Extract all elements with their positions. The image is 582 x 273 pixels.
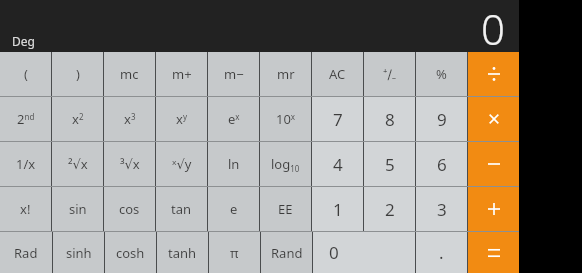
staticText: m+ <box>172 65 192 83</box>
button[interactable]: m+ <box>156 52 207 96</box>
button[interactable]: sin <box>52 187 103 231</box>
button[interactable]: 0 <box>313 232 415 273</box>
button[interactable]: Rand <box>261 232 312 273</box>
button[interactable]: x! <box>0 187 51 231</box>
staticText: 0 <box>329 241 339 264</box>
button[interactable]: cos <box>104 187 155 231</box>
button[interactable]: AC <box>312 52 363 96</box>
staticText: m− <box>224 65 244 83</box>
button[interactable]: tanh <box>157 232 208 273</box>
staticText: sin <box>69 200 87 218</box>
button[interactable]: ²√x <box>52 142 103 186</box>
staticText: 5 <box>385 153 395 176</box>
button[interactable]: mr <box>260 52 311 96</box>
staticText: xy <box>176 110 187 128</box>
button[interactable]: ³√x <box>104 142 155 186</box>
button[interactable]: x3 <box>104 97 155 141</box>
staticText: ( <box>24 65 28 83</box>
staticText: sinh <box>66 244 92 262</box>
staticText: 2 <box>385 198 395 221</box>
staticText: Rand <box>271 244 303 262</box>
button[interactable]: 8 <box>364 97 415 141</box>
staticText: 1/x <box>16 155 36 173</box>
staticText: ln <box>228 155 240 173</box>
staticText: EE <box>278 200 293 218</box>
button[interactable]: . <box>416 232 467 273</box>
staticText: 3 <box>437 198 447 221</box>
staticText: ˣ√y <box>172 155 192 173</box>
button[interactable]: π <box>209 232 260 273</box>
button[interactable]: xy <box>156 97 207 141</box>
staticText: 8 <box>385 108 395 131</box>
staticText: . <box>439 241 444 264</box>
button[interactable]: EE <box>260 187 311 231</box>
staticText: ex <box>228 110 240 128</box>
staticText: % <box>436 65 447 83</box>
staticText: ) <box>76 65 80 83</box>
button[interactable]: sinh <box>53 232 104 273</box>
staticText: 2nd <box>17 110 35 128</box>
staticText: 0 <box>481 0 505 50</box>
staticText: x3 <box>124 110 136 128</box>
staticText: x2 <box>72 110 84 128</box>
button[interactable]: 7 <box>312 97 363 141</box>
staticText: Deg <box>12 33 35 49</box>
staticText: e <box>230 200 238 218</box>
button[interactable]: 10x <box>260 97 311 141</box>
button[interactable]: 1 <box>312 187 363 231</box>
button[interactable]: Equals <box>468 232 519 273</box>
button[interactable]: ⁺∕₋ <box>364 52 415 96</box>
staticText: 9 <box>437 108 447 131</box>
button[interactable]: 2 <box>364 187 415 231</box>
button[interactable]: % <box>416 52 467 96</box>
button[interactable]: Plus <box>468 187 519 231</box>
staticText: tanh <box>168 244 197 262</box>
button[interactable]: ex <box>208 97 259 141</box>
button[interactable]: Minus <box>468 142 519 186</box>
staticText: cosh <box>116 244 145 262</box>
button[interactable]: x2 <box>52 97 103 141</box>
staticText: 4 <box>333 153 343 176</box>
button[interactable]: m− <box>208 52 259 96</box>
button[interactable]: Rad <box>0 232 52 273</box>
button[interactable]: 1/x <box>0 142 51 186</box>
button[interactable]: cosh <box>105 232 156 273</box>
button[interactable]: ˣ√y <box>156 142 207 186</box>
button[interactable]: ( <box>0 52 51 96</box>
button[interactable]: mc <box>104 52 155 96</box>
staticText: ²√x <box>68 155 88 173</box>
staticText: 1 <box>333 198 343 221</box>
button[interactable]: 5 <box>364 142 415 186</box>
button[interactable]: Multiply <box>468 97 519 141</box>
button[interactable]: 2nd <box>0 97 51 141</box>
staticText: π <box>230 244 239 262</box>
button[interactable]: log10 <box>260 142 311 186</box>
button[interactable]: tan <box>156 187 207 231</box>
button[interactable]: ln <box>208 142 259 186</box>
staticText: 7 <box>333 108 343 131</box>
button[interactable]: 9 <box>416 97 467 141</box>
button[interactable]: ) <box>52 52 103 96</box>
staticText: AC <box>329 65 346 83</box>
staticText: ³√x <box>120 155 140 173</box>
button[interactable]: 3 <box>416 187 467 231</box>
staticText: 6 <box>437 153 447 176</box>
staticText: cos <box>119 200 140 218</box>
staticText: mr <box>277 65 295 83</box>
button[interactable]: e <box>208 187 259 231</box>
staticText: tan <box>171 200 192 218</box>
staticText: Rad <box>14 244 38 262</box>
staticText: ⁺∕₋ <box>383 65 397 83</box>
staticText: log10 <box>271 155 300 174</box>
staticText: mc <box>120 65 139 83</box>
staticText: 10x <box>276 110 296 128</box>
staticText: x! <box>20 200 31 218</box>
button[interactable]: 6 <box>416 142 467 186</box>
button[interactable]: Divide <box>468 52 519 96</box>
button[interactable]: 4 <box>312 142 363 186</box>
